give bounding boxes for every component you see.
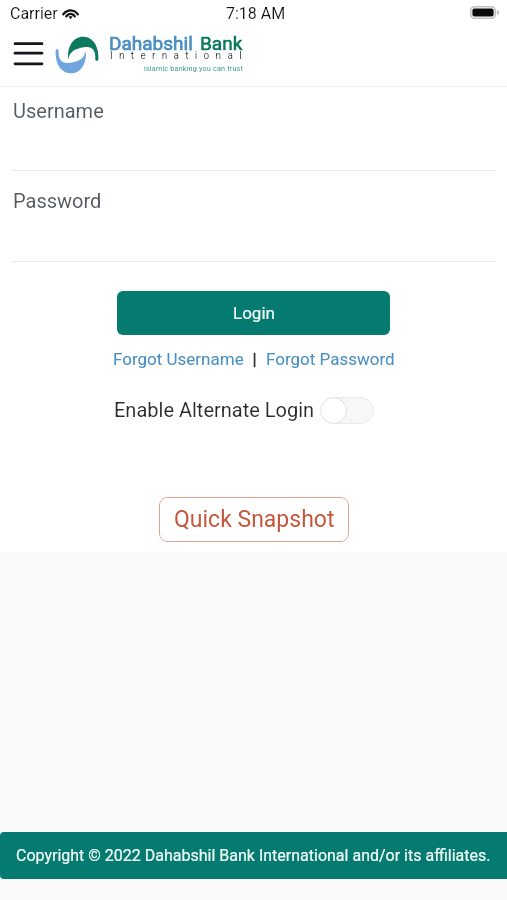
button[interactable]: Login xyxy=(117,291,390,335)
staticText: 7:18 AM xyxy=(226,4,286,23)
staticText: Password xyxy=(13,189,102,212)
staticText: Login xyxy=(233,303,275,323)
button[interactable]: Forgot Password xyxy=(266,349,395,369)
staticText: Dahabshil xyxy=(109,32,193,54)
staticText: Forgot Username xyxy=(113,349,244,369)
staticText: Bank xyxy=(200,32,243,54)
staticText: | xyxy=(244,349,266,369)
staticText: Enable Alternate Login xyxy=(114,398,315,421)
button[interactable]: Menu xyxy=(9,37,46,71)
button[interactable]: Forgot Username xyxy=(113,349,244,369)
staticText: Carrier xyxy=(10,4,58,23)
staticText: International xyxy=(110,50,248,62)
button[interactable]: Enable Alternate Login xyxy=(320,397,374,424)
button[interactable]: Quick Snapshot xyxy=(159,497,349,542)
staticText: Copyright © 2022 Dahabshil Bank Internat… xyxy=(16,846,491,865)
staticText: Forgot Password xyxy=(266,349,395,369)
staticText: Quick Snapshot xyxy=(174,506,335,533)
staticText: islamic banking you can trust xyxy=(144,64,244,72)
staticText: Username xyxy=(13,99,104,122)
